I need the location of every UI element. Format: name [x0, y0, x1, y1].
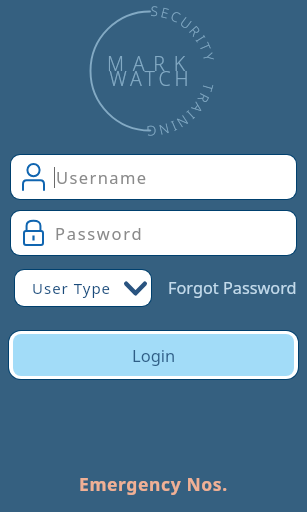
button[interactable]: Emergency Nos.	[73, 466, 234, 502]
staticText: Username	[56, 166, 148, 188]
button[interactable]: Username	[11, 155, 296, 199]
staticText: Password	[55, 222, 144, 244]
staticText: MARK	[107, 50, 194, 77]
staticText: Login	[132, 344, 176, 366]
staticText: Emergency Nos.	[79, 472, 228, 496]
button[interactable]: Forgot Password	[164, 273, 301, 303]
staticText: WATCH	[109, 65, 193, 92]
button[interactable]: Password	[11, 211, 296, 255]
staticText: User Type	[32, 278, 112, 298]
button[interactable]: User Type	[15, 270, 151, 306]
button[interactable]: Login	[13, 334, 294, 376]
staticText: Forgot Password	[168, 277, 297, 299]
